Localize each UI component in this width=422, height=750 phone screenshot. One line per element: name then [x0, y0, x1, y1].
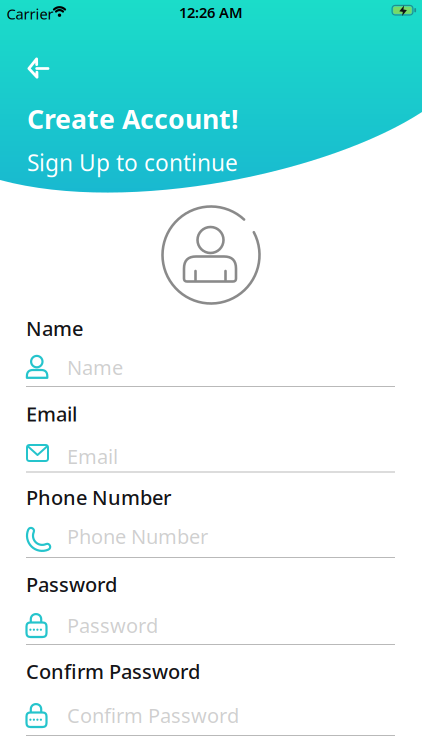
- staticText: Name: [26, 315, 83, 342]
- staticText: Email: [26, 400, 77, 427]
- button[interactable]: Confirm Password: [26, 658, 395, 736]
- staticText: Name: [67, 354, 123, 381]
- button[interactable]: Email: [26, 400, 395, 472]
- button[interactable]: Back: [26, 56, 50, 80]
- staticText: Password: [26, 571, 117, 598]
- button[interactable]: Password: [26, 571, 395, 645]
- staticText: Sign Up to continue: [27, 147, 238, 178]
- staticText: Email: [67, 443, 118, 470]
- staticText: Confirm Password: [26, 658, 200, 685]
- staticText: 12:26 AM: [179, 2, 243, 22]
- staticText: Carrier: [6, 4, 53, 23]
- staticText: Password: [67, 612, 158, 639]
- staticText: Phone Number: [26, 484, 171, 511]
- button[interactable]: Phone Number: [26, 484, 395, 558]
- staticText: Create Account!: [27, 101, 239, 136]
- staticText: Phone Number: [67, 523, 208, 550]
- button[interactable]: Name: [26, 315, 395, 387]
- staticText: Confirm Password: [67, 702, 239, 729]
